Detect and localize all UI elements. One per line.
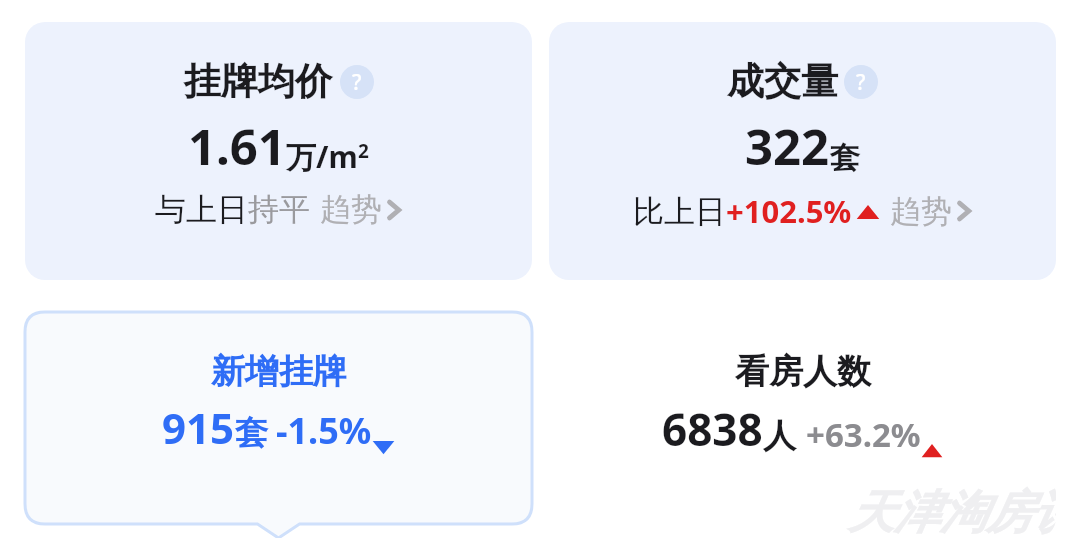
staticText: 万/m [286, 136, 358, 177]
staticText: 322 [745, 113, 830, 180]
button[interactable]: Help [844, 65, 878, 99]
staticText: 套 [830, 139, 860, 177]
staticText: 天津淘房说 [848, 484, 1056, 538]
staticText: 6838 [662, 399, 763, 459]
staticText: 成交量 [727, 58, 838, 105]
staticText: 比上日 [633, 192, 726, 231]
staticText: 1.61 [188, 113, 286, 180]
staticText: 挂牌均价 [184, 58, 332, 105]
staticText: 与上日 [155, 190, 248, 229]
staticText: 趋势 [320, 190, 382, 229]
staticText: +63.2% [806, 412, 921, 457]
button[interactable]: 挂牌均价 [25, 22, 532, 280]
staticText: 人 [763, 415, 796, 457]
staticText: 2 [358, 138, 369, 164]
staticText: 套 [235, 412, 268, 454]
staticText: -1.5% [276, 406, 372, 455]
button[interactable]: 天津淘房说 [549, 312, 1056, 538]
staticText: 915 [162, 399, 235, 456]
staticText: 趋势 [890, 192, 952, 231]
button[interactable]: 新增挂牌 [25, 312, 532, 456]
button[interactable]: 成交量 [549, 22, 1056, 280]
button[interactable]: 比上日 [633, 190, 972, 232]
staticText: 新增挂牌 [211, 350, 347, 393]
staticText: ? [352, 68, 362, 97]
button[interactable]: 与上日 [155, 190, 402, 229]
staticText: 看房人数 [735, 350, 871, 393]
staticText: 持平 [248, 190, 310, 229]
staticText: ? [856, 68, 866, 97]
button[interactable]: Help [340, 65, 374, 99]
staticText: +102.5% [726, 190, 852, 232]
